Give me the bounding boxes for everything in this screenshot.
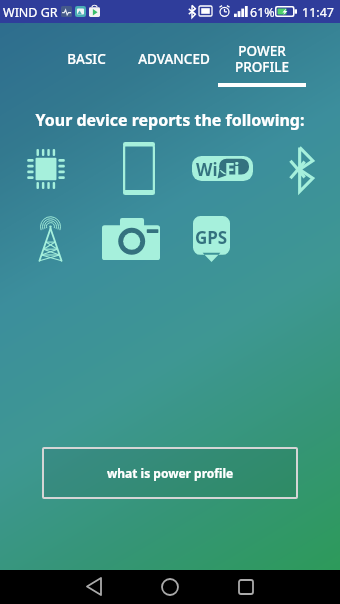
button[interactable]: BASIC: [42, 23, 130, 98]
button[interactable]: POWER PROFILE: [218, 23, 306, 98]
button[interactable]: ADVANCED: [130, 23, 218, 98]
staticText: ADVANCED: [138, 50, 210, 68]
button[interactable]: what is power profile: [42, 447, 298, 499]
staticText: Your device reports the following:: [0, 109, 340, 131]
other: Display: [123, 142, 155, 195]
staticText: what is power profile: [107, 465, 234, 481]
other: Camera: [102, 218, 160, 260]
other: Bluetooth: [290, 147, 313, 192]
other: GPS: [193, 216, 230, 262]
staticText: BASIC: [67, 50, 106, 68]
staticText: 61%: [250, 4, 275, 21]
staticText: WIND GR: [3, 4, 58, 21]
other: Wi-Fi: [192, 156, 253, 181]
other: Cellular radio: [39, 215, 62, 261]
staticText: POWER PROFILE: [235, 42, 289, 76]
staticText: Wi: [196, 158, 218, 181]
button[interactable]: Home: [161, 578, 179, 596]
staticText: Fi: [225, 158, 240, 181]
button[interactable]: Recents: [238, 579, 254, 595]
staticText: GPS: [195, 226, 228, 249]
button[interactable]: Back: [87, 578, 101, 595]
other: CPU: [27, 149, 65, 189]
staticText: 11:47: [302, 4, 334, 21]
